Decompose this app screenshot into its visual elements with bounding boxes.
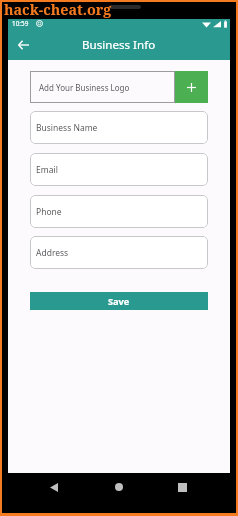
button[interactable]: Save — [30, 292, 208, 310]
staticText: Email — [36, 164, 58, 176]
staticText: Address — [36, 247, 69, 259]
button[interactable]: Add logo — [175, 71, 208, 103]
button[interactable]: Back — [10, 32, 36, 58]
staticText: hack-cheat.org — [4, 0, 112, 19]
button[interactable]: Business Name — [30, 111, 208, 144]
staticText: Add Your Business Logo — [39, 82, 130, 93]
button[interactable]: Recent apps — [168, 473, 196, 501]
button[interactable]: Home — [105, 473, 133, 501]
staticText: 10:59 — [12, 19, 29, 28]
button[interactable]: Address — [30, 236, 208, 269]
button[interactable]: Phone — [30, 195, 208, 228]
button[interactable]: Email — [30, 153, 208, 186]
staticText: Save — [108, 295, 130, 308]
staticText: Phone — [36, 206, 62, 218]
button[interactable]: Add Your Business Logo — [30, 71, 175, 103]
staticText: Business Name — [36, 122, 98, 134]
button[interactable]: Back — [40, 473, 68, 501]
staticText: Business Info — [82, 37, 156, 53]
